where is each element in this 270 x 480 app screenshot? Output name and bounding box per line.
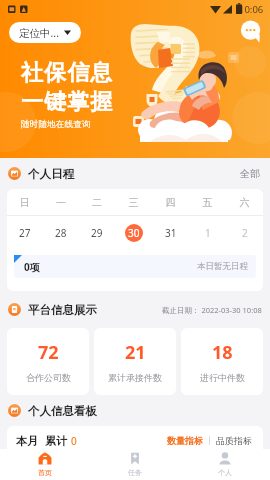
staticText: 合作公司数 — [26, 372, 71, 383]
staticText: 29 — [91, 226, 103, 240]
staticText: 个人日程 — [28, 167, 74, 181]
staticText: 2 — [242, 226, 248, 240]
staticText: 首页 — [38, 468, 52, 477]
staticText: 品质指标 — [216, 435, 252, 446]
staticText: 72 — [38, 340, 59, 365]
staticText: 个人信息看板 — [28, 404, 97, 418]
staticText: 30 — [128, 226, 140, 240]
staticText: 数量指标 — [167, 435, 203, 446]
button[interactable]: 定位中... — [9, 22, 81, 43]
staticText: 累计承接件数 — [108, 372, 162, 383]
button[interactable]: 21 — [94, 328, 176, 395]
button[interactable]: 0项 — [14, 255, 256, 278]
staticText: 本月 — [16, 434, 38, 448]
staticText: 截止日期： 2022-03-30 10:08 — [162, 305, 262, 315]
staticText: 一键掌握 — [21, 88, 114, 116]
staticText: 0项 — [24, 260, 40, 274]
staticText: 一 — [43, 196, 79, 209]
button[interactable]: Customer service chat — [240, 20, 262, 42]
staticText: 31 — [165, 226, 177, 240]
staticText: 0 — [71, 434, 77, 448]
staticText: 四 — [152, 196, 189, 209]
staticText: 18 — [212, 340, 233, 365]
staticText: 全部 — [240, 167, 260, 180]
button[interactable]: 1 — [189, 216, 226, 250]
button[interactable]: 个人 — [180, 449, 270, 480]
staticText: 1 — [205, 226, 211, 240]
button[interactable]: 18 — [181, 328, 263, 395]
staticText: 累计 — [45, 434, 67, 448]
button[interactable]: 首页 — [0, 449, 90, 480]
staticText: 三 — [115, 196, 152, 209]
button[interactable]: 数量指标 — [165, 432, 205, 449]
staticText: 21 — [125, 340, 146, 365]
staticText: 五 — [189, 196, 226, 209]
staticText: 个人 — [218, 468, 232, 477]
button[interactable]: 品质指标 — [214, 432, 254, 449]
button[interactable]: 2 — [226, 216, 263, 250]
button[interactable]: 30 — [115, 216, 152, 250]
staticText: 28 — [55, 226, 67, 240]
button[interactable]: 27 — [7, 216, 43, 250]
button[interactable]: 31 — [152, 216, 189, 250]
button[interactable]: 28 — [43, 216, 79, 250]
staticText: 10:06 — [239, 3, 264, 16]
staticText: 平台信息展示 — [28, 303, 97, 317]
staticText: 日 — [7, 196, 43, 209]
button[interactable]: 全部 — [238, 163, 262, 184]
button[interactable]: 72 — [7, 328, 89, 395]
staticText: 任务 — [128, 468, 142, 477]
staticText: 进行中件数 — [200, 372, 245, 383]
staticText: 六 — [226, 196, 263, 209]
staticText: 本日暂无日程 — [197, 261, 248, 272]
button[interactable]: 任务 — [90, 449, 180, 480]
staticText: 二 — [79, 196, 115, 209]
staticText: 27 — [19, 226, 31, 240]
staticText: 定位中... — [19, 26, 59, 40]
button[interactable]: 29 — [79, 216, 115, 250]
staticText: 社保信息 — [21, 59, 114, 87]
staticText: 随时随地在线查询 — [21, 119, 91, 130]
